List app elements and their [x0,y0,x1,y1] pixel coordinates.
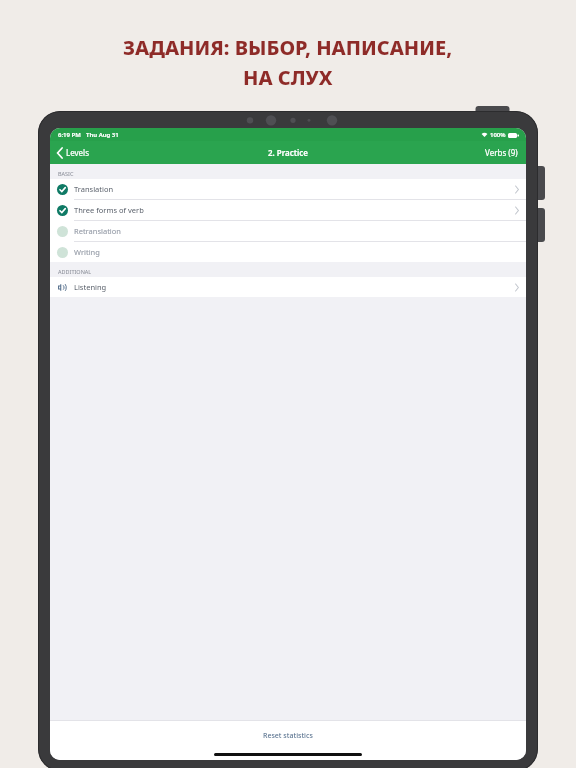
staticText: Verbs (9) [485,147,518,158]
button[interactable]: Writing [50,242,526,262]
staticText: Retranslation [74,226,519,236]
staticText: 2. Practice [268,147,308,158]
staticText: Three forms of verb [74,205,515,215]
staticText: Thu Aug 31 [86,131,119,139]
staticText: ADDITIONAL [58,268,92,275]
staticText: 100% [490,131,506,139]
staticText: НА СЛУХ [243,64,333,91]
button[interactable]: Three forms of verb [50,200,526,220]
staticText: Translation [74,184,515,194]
staticText: Listening [74,282,515,292]
staticText: Reset statistics [263,731,313,741]
button[interactable]: Retranslation [50,221,526,241]
button[interactable]: Levels [50,143,98,162]
button[interactable]: Translation [50,179,526,199]
staticText: ЗАДАНИЯ: ВЫБОР, НАПИСАНИЕ, [123,34,453,61]
button[interactable]: Reset statistics [253,728,323,744]
button[interactable]: Verbs (9) [477,143,526,162]
button[interactable]: Listening [50,277,526,297]
staticText: Writing [74,247,519,257]
staticText: 6:19 PM [58,131,81,139]
staticText: Levels [66,147,90,158]
staticText: BASIC [58,170,74,177]
